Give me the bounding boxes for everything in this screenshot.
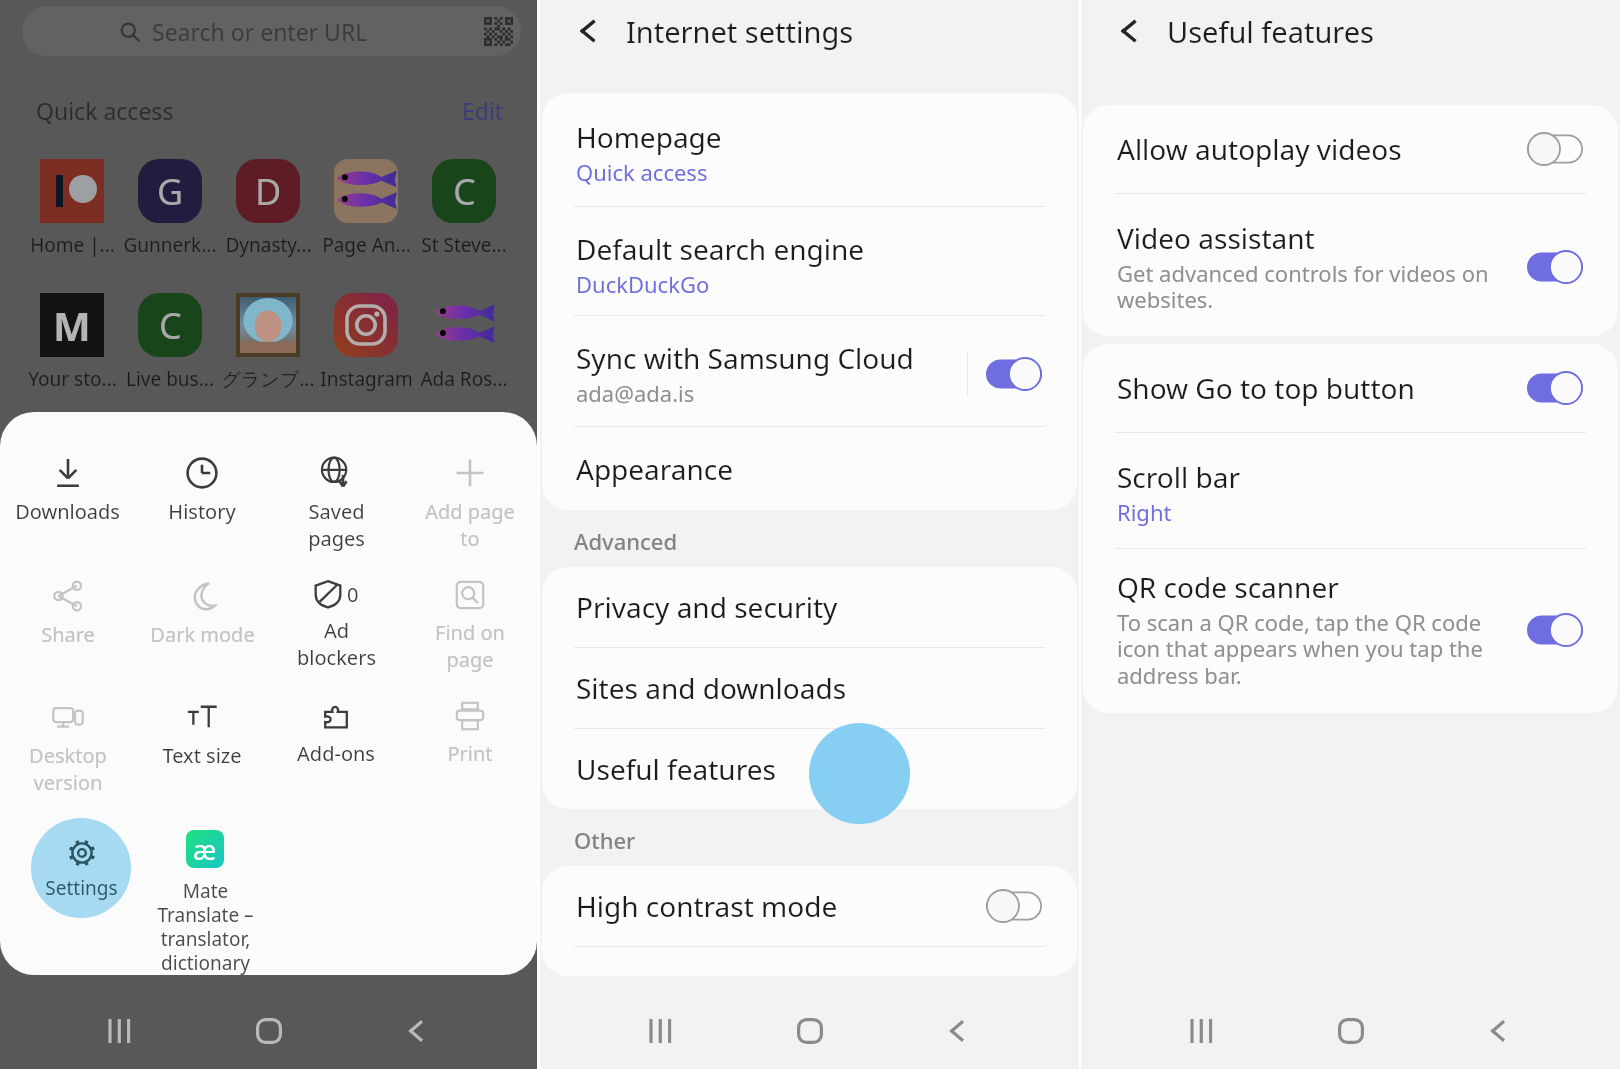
- button[interactable]: Print: [403, 701, 537, 767]
- staticText: Text size: [162, 742, 242, 769]
- button[interactable]: Off: [986, 889, 1042, 923]
- button[interactable]: Dark mode: [135, 580, 269, 648]
- button[interactable]: G: [121, 159, 219, 258]
- staticText: Allow autoplay videos: [1117, 130, 1527, 168]
- button[interactable]: Find on page: [403, 580, 537, 673]
- button[interactable]: Show Go to top button: [1083, 344, 1618, 432]
- staticText: Desktop version: [29, 742, 107, 796]
- staticText: Homepage: [576, 118, 722, 156]
- button[interactable]: Scan QR code: [484, 17, 513, 46]
- staticText: Quick access: [36, 95, 174, 126]
- button[interactable]: Page An...: [317, 159, 415, 258]
- staticText: Video assistant: [1117, 219, 1315, 257]
- button[interactable]: C: [415, 159, 513, 258]
- staticText: Home |...: [30, 232, 115, 258]
- button[interactable]: Desktop version: [0, 701, 135, 796]
- button[interactable]: Recent apps: [636, 1005, 688, 1057]
- button[interactable]: History: [135, 457, 269, 525]
- button[interactable]: Video assistant: [1083, 194, 1618, 336]
- staticText: Page An...: [322, 232, 411, 258]
- staticText: High contrast mode: [576, 887, 986, 925]
- staticText: Scroll bar: [1117, 458, 1240, 496]
- button[interactable]: Home |...: [23, 159, 121, 258]
- button[interactable]: QR code scanner: [1083, 549, 1618, 713]
- button[interactable]: On: [1527, 250, 1583, 284]
- button[interactable]: Share: [0, 580, 135, 648]
- button[interactable]: M: [23, 293, 121, 392]
- staticText: Internet settings: [626, 12, 854, 51]
- staticText: Add page to: [425, 498, 515, 552]
- staticText: Dark mode: [150, 621, 255, 648]
- button[interactable]: Add page to: [403, 457, 537, 552]
- button[interactable]: Back: [931, 1005, 983, 1057]
- button[interactable]: Default search engine: [542, 207, 1077, 315]
- button[interactable]: Back: [390, 1005, 442, 1057]
- staticText: Settings: [45, 875, 118, 901]
- button[interactable]: Instagram: [317, 293, 415, 392]
- button[interactable]: Settings: [31, 818, 131, 918]
- button[interactable]: Allow autoplay videos: [1083, 105, 1618, 193]
- staticText: Instagram: [320, 366, 413, 392]
- staticText: Find on page: [435, 619, 505, 673]
- staticText: Advanced: [574, 526, 678, 556]
- staticText: Privacy and security: [576, 588, 838, 626]
- staticText: To scan a QR code, tap the QR code icon …: [1117, 607, 1483, 691]
- button[interactable]: Saved pages: [269, 457, 403, 552]
- staticText: ada@ada.is: [576, 378, 695, 408]
- button[interactable]: Scroll bar: [1083, 433, 1618, 548]
- staticText: History: [168, 498, 236, 525]
- staticText: Saved pages: [308, 498, 365, 552]
- staticText: D: [255, 167, 282, 216]
- staticText: Downloads: [15, 498, 120, 525]
- staticText: Default search engine: [576, 230, 865, 268]
- button[interactable]: グランブ...: [219, 293, 317, 392]
- staticText: C: [453, 167, 476, 216]
- button[interactable]: D: [219, 159, 317, 258]
- staticText: Print: [447, 740, 493, 767]
- button[interactable]: Recent apps: [95, 1005, 147, 1057]
- staticText: Sync with Samsung Cloud: [576, 339, 914, 377]
- staticText: Get advanced controls for videos on webs…: [1117, 258, 1489, 315]
- staticText: Ada Ros...: [420, 366, 508, 392]
- staticText: Dynasty...: [225, 232, 312, 258]
- button[interactable]: Navigate up: [568, 11, 608, 51]
- staticText: Sites and downloads: [576, 669, 847, 707]
- button[interactable]: On: [1527, 371, 1583, 405]
- staticText: グランブ...: [221, 366, 315, 392]
- button[interactable]: On: [986, 357, 1042, 391]
- button[interactable]: Home: [1325, 1005, 1377, 1057]
- staticText: 0: [347, 581, 359, 608]
- button[interactable]: Downloads: [0, 457, 135, 525]
- staticText: Useful features: [1167, 12, 1375, 51]
- staticText: Live bus...: [126, 366, 214, 392]
- button[interactable]: Back: [1472, 1005, 1524, 1057]
- button[interactable]: Off: [1527, 132, 1583, 166]
- button[interactable]: Add-ons: [269, 701, 403, 767]
- button[interactable]: Home: [243, 1005, 295, 1057]
- staticText: M: [53, 298, 91, 352]
- button[interactable]: Edit: [462, 95, 504, 126]
- staticText: Useful features: [576, 750, 776, 788]
- staticText: QR code scanner: [1117, 568, 1339, 606]
- button[interactable]: Navigate up: [1109, 11, 1149, 51]
- button[interactable]: Privacy and security: [542, 567, 1077, 647]
- button[interactable]: 0: [269, 580, 403, 671]
- button[interactable]: C: [121, 293, 219, 392]
- button[interactable]: Search or enter URL: [22, 6, 521, 56]
- button[interactable]: Text size: [135, 701, 269, 769]
- button[interactable]: On: [1527, 613, 1583, 647]
- button[interactable]: Recent apps: [1177, 1005, 1229, 1057]
- button[interactable]: High contrast mode: [542, 866, 1077, 946]
- button[interactable]: Appearance: [542, 427, 1077, 510]
- button[interactable]: Sites and downloads: [542, 648, 1077, 728]
- staticText: Share: [41, 621, 95, 648]
- staticText: Mate Translate – translator, dictionary: [157, 878, 254, 975]
- staticText: G: [157, 167, 184, 216]
- button[interactable]: Homepage: [542, 93, 1077, 206]
- button[interactable]: Home: [784, 1005, 836, 1057]
- button[interactable]: Useful features: [542, 729, 1077, 809]
- button[interactable]: æ: [141, 830, 269, 975]
- button[interactable]: Sync with Samsung Cloud: [542, 316, 1077, 426]
- button[interactable]: Ada Ros...: [415, 293, 513, 392]
- staticText: C: [159, 301, 182, 350]
